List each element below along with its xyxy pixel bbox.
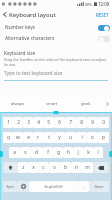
staticText: s [24, 149, 27, 156]
button[interactable]: geek [69, 95, 103, 112]
staticText: b [64, 164, 67, 171]
button[interactable]: Resize keyboard right [109, 151, 112, 157]
button[interactable]: z [18, 162, 28, 173]
button[interactable]: e [23, 132, 33, 143]
button[interactable]: 0 [98, 117, 109, 128]
staticText: RESET [96, 12, 109, 18]
staticText: Drag the handles on the sides of the key… [4, 57, 108, 67]
button[interactable]: k [83, 147, 93, 158]
staticText: 5 [47, 119, 50, 126]
button[interactable]: 5 [43, 117, 54, 128]
button[interactable]: RESET [93, 9, 112, 21]
staticText: 88% [85, 2, 93, 7]
button[interactable]: 7 [65, 117, 76, 128]
staticText: Type to test keyboard size [4, 70, 63, 77]
staticText: w [16, 134, 20, 141]
button[interactable]: t [43, 132, 54, 143]
button[interactable]: . [78, 181, 89, 192]
staticText: 8 [80, 119, 83, 126]
button[interactable]: v [49, 162, 60, 173]
button[interactable]: 3 [23, 117, 33, 128]
staticText: d [35, 149, 38, 156]
staticText: h [67, 149, 70, 156]
staticText: Alternative characters [5, 35, 55, 42]
staticText: English(UK) [44, 184, 63, 189]
staticText: i [81, 134, 83, 141]
button[interactable]: j [73, 147, 83, 158]
staticText: geek [81, 101, 91, 107]
staticText: 2 [17, 119, 20, 126]
other: Shift [8, 165, 13, 170]
staticText: e [27, 134, 30, 141]
button[interactable]: a [9, 147, 20, 158]
button[interactable]: b [60, 162, 71, 173]
button[interactable]: n [71, 162, 82, 173]
button[interactable]: s [20, 147, 31, 158]
staticText: u [69, 134, 72, 141]
staticText: x [32, 164, 35, 171]
staticText: 9 [91, 119, 94, 126]
staticText: p [102, 134, 105, 141]
button[interactable]: 1 [3, 117, 13, 128]
button[interactable]: More suggestions [103, 95, 112, 112]
staticText: q [7, 134, 10, 141]
button[interactable]: u [65, 132, 76, 143]
button[interactable]: Done [89, 181, 109, 192]
button[interactable]: g [53, 147, 63, 158]
button[interactable]: d [31, 147, 42, 158]
other: Backspace [98, 166, 104, 170]
staticText: 7 [69, 119, 72, 126]
button[interactable]: Number keys [0, 22, 112, 33]
staticText: l [97, 149, 99, 156]
button[interactable]: 8 [76, 117, 87, 128]
button[interactable]: i [76, 132, 87, 143]
button[interactable]: y [54, 132, 65, 143]
button[interactable]: 9 [87, 117, 98, 128]
button[interactable]: p [98, 132, 109, 143]
button[interactable]: 4 [33, 117, 43, 128]
staticText: c [42, 164, 45, 171]
staticText: Sym [6, 184, 14, 189]
staticText: 12:09 [98, 1, 110, 7]
staticText: o [91, 134, 94, 141]
button[interactable]: Type to test keyboard size [4, 70, 108, 81]
button[interactable]: English(UK) [29, 181, 78, 192]
other: Keyboard settings [21, 184, 26, 189]
button[interactable]: Keyboard settings [17, 181, 29, 192]
button[interactable]: Shift [3, 162, 18, 173]
staticText: Keyboard size [4, 50, 36, 57]
staticText: j [77, 149, 79, 156]
button[interactable]: 6 [54, 117, 65, 128]
button[interactable]: Navigate up [0, 8, 9, 21]
staticText: 4 [37, 119, 40, 126]
staticText: Keyboard layout [9, 11, 56, 19]
staticText: 3 [27, 119, 30, 126]
button[interactable]: m [82, 162, 93, 173]
button[interactable]: o [87, 132, 98, 143]
button[interactable]: c [38, 162, 49, 173]
button[interactable]: Sym [3, 181, 17, 192]
button[interactable]: Backspace [93, 162, 109, 173]
staticText: v [53, 164, 56, 171]
button[interactable]: q [3, 132, 13, 143]
staticText: Number keys [5, 24, 35, 31]
button[interactable]: always [0, 95, 35, 112]
button[interactable]: 2 [13, 117, 23, 128]
button[interactable]: Alternative characters [0, 33, 112, 44]
staticText: . [83, 183, 85, 190]
button[interactable]: h [63, 147, 73, 158]
button[interactable]: Resize keyboard height [53, 111, 59, 114]
button[interactable]: r [33, 132, 43, 143]
button[interactable]: x [28, 162, 38, 173]
staticText: n [75, 164, 78, 171]
staticText: m [85, 164, 90, 171]
button[interactable]: w [13, 132, 23, 143]
staticText: k [87, 149, 90, 156]
button[interactable]: smart [35, 95, 69, 112]
staticText: t [48, 134, 50, 141]
button[interactable]: Resize keyboard left [0, 151, 3, 157]
staticText: 1 [7, 119, 10, 126]
button[interactable]: l [93, 147, 103, 158]
staticText: smart [46, 101, 58, 107]
button[interactable]: f [42, 147, 53, 158]
